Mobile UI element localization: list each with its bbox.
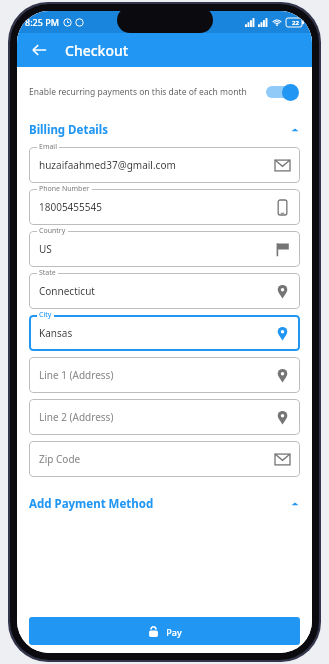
- button[interactable]: Add Payment Method: [17, 493, 312, 515]
- staticText: huzaifaahmed37@gmail.com: [39, 158, 176, 172]
- button[interactable]: Connecticut: [29, 273, 300, 309]
- staticText: Zip Code: [39, 452, 81, 466]
- staticText: Line 2 (Address): [39, 410, 114, 424]
- staticText: Phone Number: [39, 184, 90, 194]
- button[interactable]: Pay: [29, 617, 300, 645]
- staticText: Email: [39, 142, 57, 152]
- staticText: US: [39, 242, 52, 256]
- staticText: State: [39, 268, 56, 278]
- staticText: Checkout: [65, 41, 129, 60]
- button[interactable]: Enable recurring payments on this date o…: [17, 79, 312, 105]
- staticText: Pay: [166, 626, 182, 638]
- button[interactable]: Kansas: [29, 315, 300, 351]
- staticText: 18005455545: [39, 200, 102, 214]
- button[interactable]: Zip Code: [29, 441, 300, 477]
- staticText: Enable recurring payments on this date o…: [29, 86, 260, 98]
- staticText: 22: [292, 19, 299, 27]
- staticText: 8:25 PM: [25, 16, 59, 28]
- button[interactable]: Line 2 (Address): [29, 399, 300, 435]
- staticText: Billing Details: [29, 122, 108, 138]
- staticText: City: [39, 310, 52, 320]
- button[interactable]: US: [29, 231, 300, 267]
- button[interactable]: Line 1 (Address): [29, 357, 300, 393]
- button[interactable]: Billing Details: [17, 119, 312, 141]
- staticText: Connecticut: [39, 284, 95, 298]
- staticText: Add Payment Method: [29, 496, 154, 512]
- staticText: Line 1 (Address): [39, 368, 114, 382]
- staticText: Kansas: [39, 326, 73, 340]
- button[interactable]: 18005455545: [29, 189, 300, 225]
- button[interactable]: Back: [25, 36, 53, 64]
- staticText: Country: [39, 226, 66, 236]
- button[interactable]: huzaifaahmed37@gmail.com: [29, 147, 300, 183]
